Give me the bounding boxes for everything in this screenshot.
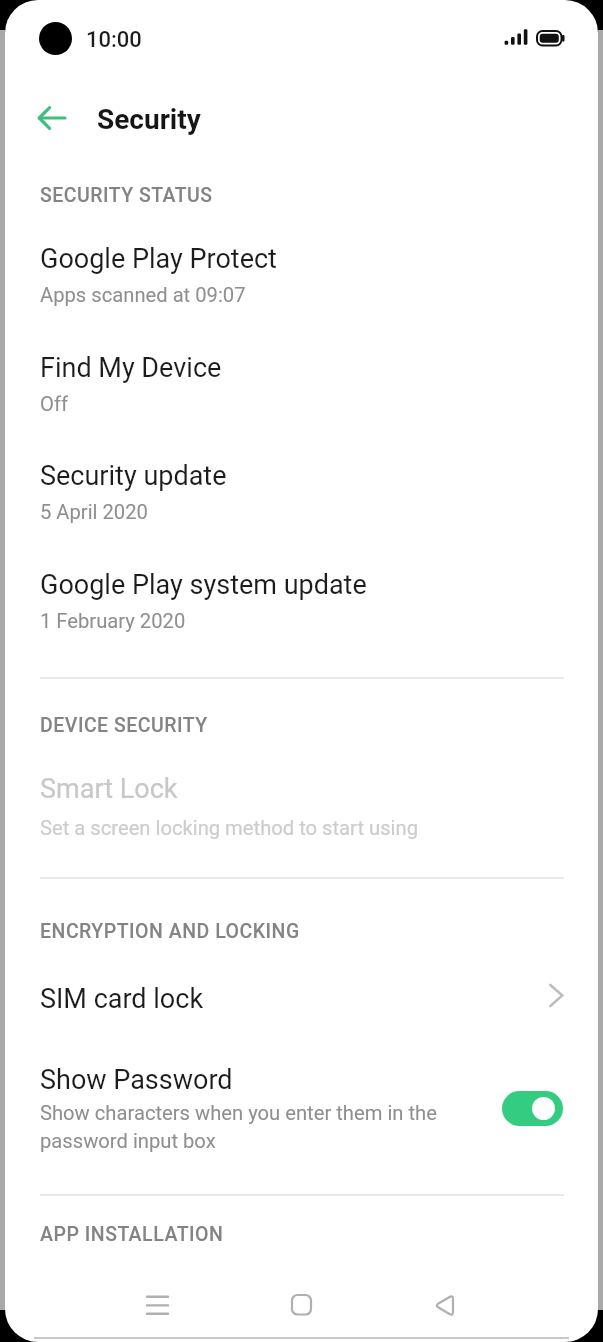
staticText: Google Play Protect [40, 243, 277, 275]
button[interactable]: Google Play system update [6, 555, 597, 663]
button[interactable] [404, 1275, 484, 1335]
staticText: SECURITY STATUS [40, 184, 213, 207]
button[interactable]: Security update [6, 446, 597, 554]
staticText: Google Play system update [40, 569, 367, 601]
button[interactable] [30, 98, 74, 138]
button[interactable]: Show Password [6, 1038, 597, 1168]
staticText: APP INSTALLATION [40, 1223, 224, 1246]
staticText: 1 February 2020 [40, 609, 186, 633]
staticText: Show Password [40, 1064, 233, 1096]
button[interactable]: SIM card lock [6, 957, 597, 1037]
staticText: Find My Device [40, 352, 222, 384]
button[interactable] [502, 1091, 563, 1126]
staticText: 5 April 2020 [40, 500, 148, 524]
staticText: Show characters when you enter them in t… [40, 1101, 437, 1153]
staticText: DEVICE SECURITY [40, 714, 208, 737]
staticText: Security [97, 103, 201, 136]
staticText: Apps scanned at 09:07 [40, 283, 246, 307]
staticText: 10:00 [86, 27, 142, 53]
staticText: Off [40, 392, 68, 416]
button[interactable] [261, 1275, 341, 1335]
button[interactable]: Smart Lock [6, 759, 597, 867]
button[interactable] [118, 1275, 198, 1335]
staticText: SIM card lock [40, 983, 204, 1015]
staticText: Smart Lock [40, 773, 178, 805]
staticText: ENCRYPTION AND LOCKING [40, 920, 300, 943]
staticText: Set a screen locking method to start usi… [40, 816, 418, 840]
staticText: Security update [40, 460, 227, 492]
button[interactable]: Google Play Protect [6, 229, 597, 337]
button[interactable]: Find My Device [6, 338, 597, 446]
